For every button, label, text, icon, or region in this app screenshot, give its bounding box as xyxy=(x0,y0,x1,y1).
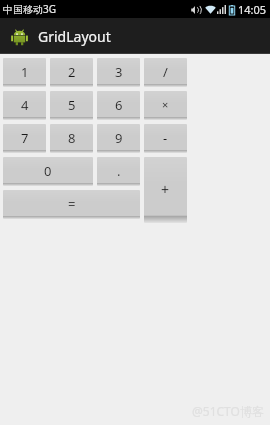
button[interactable]: 5 xyxy=(50,91,93,120)
button[interactable]: 8 xyxy=(50,124,93,153)
staticText: GridLayout xyxy=(38,27,111,46)
button[interactable]: - xyxy=(144,124,187,153)
button[interactable]: 0 xyxy=(3,157,93,186)
button[interactable]: . xyxy=(97,157,140,186)
staticText: 14:05 xyxy=(238,2,267,17)
button[interactable]: = xyxy=(3,190,140,219)
staticText: 1 xyxy=(21,63,29,81)
button[interactable]: 1 xyxy=(3,58,46,87)
staticText: 3 xyxy=(115,63,123,81)
staticText: 8 xyxy=(68,129,76,147)
staticText: 5 xyxy=(68,96,76,114)
button[interactable]: 6 xyxy=(97,91,140,120)
staticText: 6 xyxy=(115,96,123,114)
staticText: 4 xyxy=(21,96,29,114)
button[interactable]: × xyxy=(144,91,187,120)
staticText: 2 xyxy=(68,63,76,81)
button[interactable]: 7 xyxy=(3,124,46,153)
button[interactable]: / xyxy=(144,58,187,87)
button[interactable]: 2 xyxy=(50,58,93,87)
button[interactable]: 9 xyxy=(97,124,140,153)
staticText: 中国移动3G xyxy=(3,2,56,16)
staticText: × xyxy=(162,97,169,112)
button[interactable]: 4 xyxy=(3,91,46,120)
staticText: 7 xyxy=(21,129,29,147)
staticText: = xyxy=(68,195,76,213)
staticText: + xyxy=(161,180,170,199)
button[interactable]: + xyxy=(144,157,187,223)
staticText: . xyxy=(117,162,121,180)
staticText: - xyxy=(163,129,168,147)
staticText: / xyxy=(163,63,168,81)
staticText: 9 xyxy=(115,129,123,147)
button[interactable]: 3 xyxy=(97,58,140,87)
staticText: 0 xyxy=(44,162,52,180)
staticText: @51CTO博客 xyxy=(192,403,264,419)
